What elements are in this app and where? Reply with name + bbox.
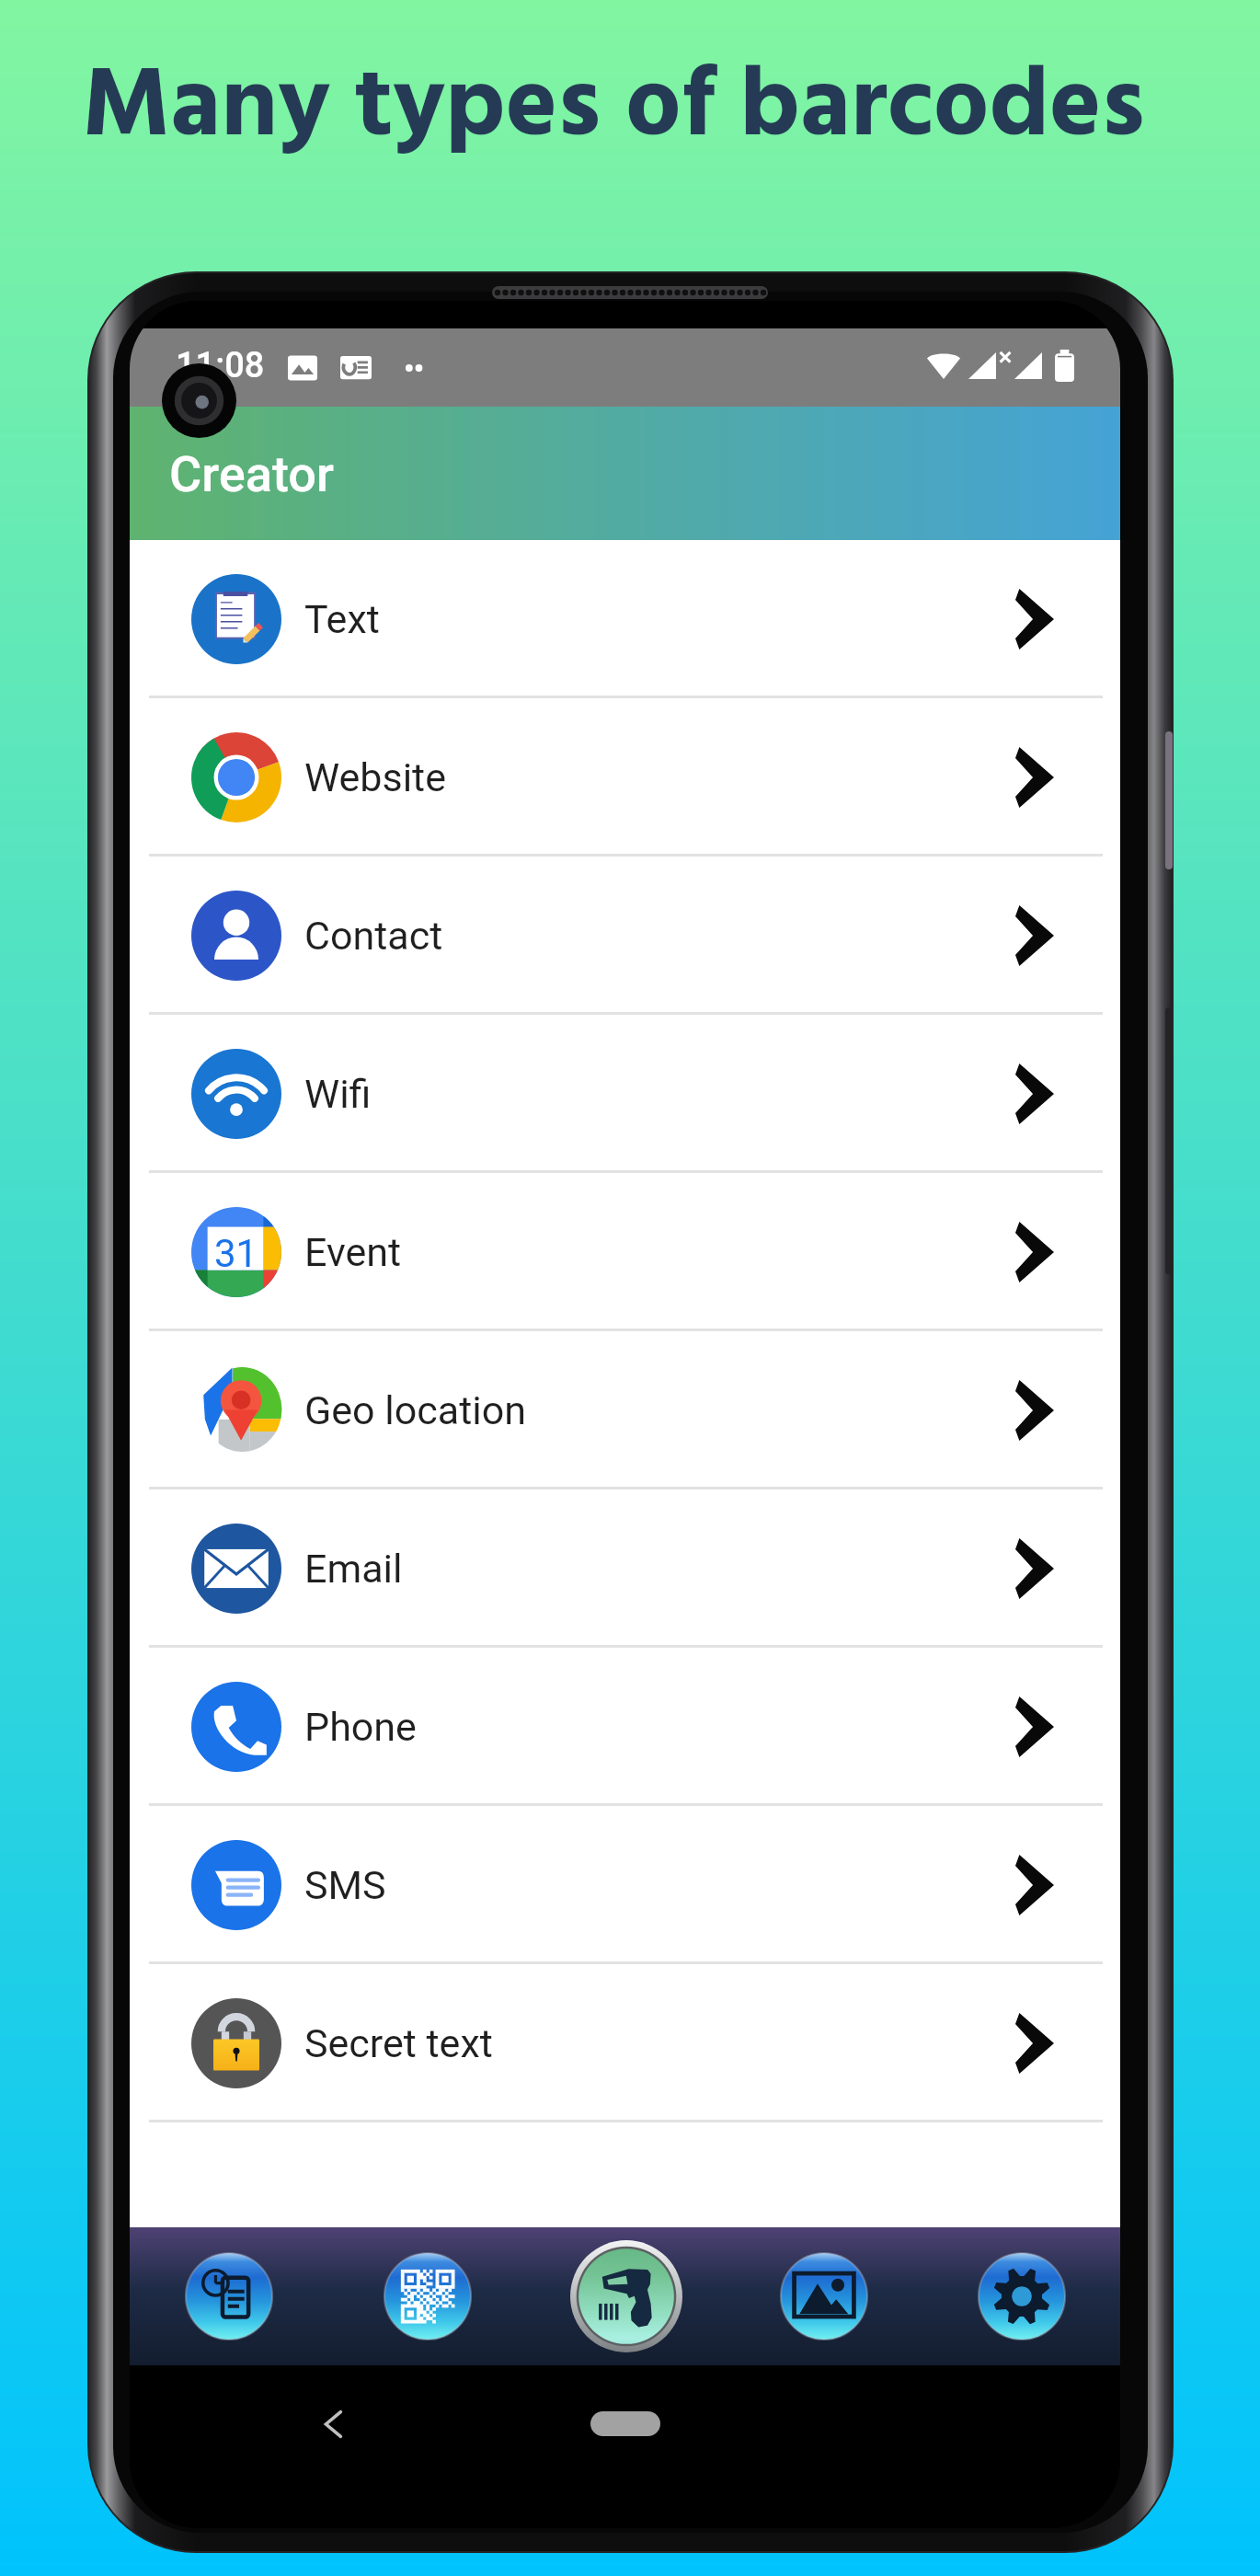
staticText: Website	[304, 754, 446, 800]
staticText: Event	[304, 1229, 402, 1275]
button[interactable]: Settings	[922, 2227, 1120, 2365]
staticText: 11:08	[176, 345, 265, 386]
button[interactable]: Email	[130, 1489, 1120, 1648]
staticText: Geo location	[304, 1387, 526, 1433]
button[interactable]: Text	[130, 540, 1120, 698]
staticText: SMS	[304, 1862, 386, 1908]
button[interactable]: Website	[130, 698, 1120, 857]
staticText: Phone	[304, 1704, 417, 1750]
staticText: Text	[304, 596, 380, 642]
button[interactable]: 31	[130, 1173, 1120, 1331]
button[interactable]: Geo location	[130, 1331, 1120, 1489]
staticText: Secret text	[304, 2020, 493, 2066]
button[interactable]: Back	[304, 2396, 361, 2453]
button[interactable]: Create code	[328, 2227, 527, 2365]
button[interactable]: Wifi	[130, 1015, 1120, 1173]
staticText: Wifi	[304, 1071, 372, 1117]
staticText: 31	[214, 1231, 258, 1276]
button[interactable]: Home	[590, 2411, 660, 2436]
button[interactable]: Gallery	[725, 2227, 922, 2365]
button[interactable]: Phone	[130, 1648, 1120, 1806]
staticText: Many types of barcodes	[0, 30, 1243, 188]
button[interactable]: SMS	[130, 1806, 1120, 1964]
button[interactable]: Contact	[130, 857, 1120, 1015]
staticText: Contact	[304, 913, 443, 959]
staticText: Creator	[169, 445, 334, 503]
button[interactable]: History	[130, 2227, 328, 2365]
staticText: Email	[304, 1546, 403, 1592]
button[interactable]: Secret text	[130, 1964, 1120, 2122]
button[interactable]: Scan	[527, 2227, 725, 2365]
